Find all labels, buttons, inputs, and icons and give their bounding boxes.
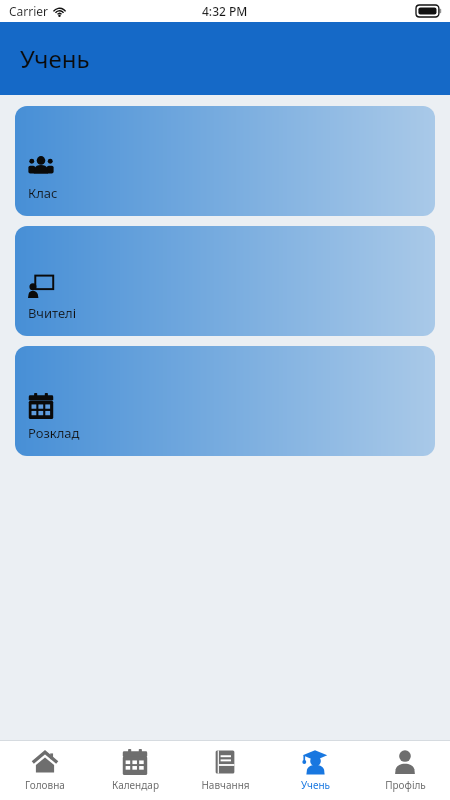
button[interactable]: Календар (90, 741, 180, 800)
staticText: Вчителі (28, 304, 77, 322)
staticText: Клас (28, 184, 58, 202)
staticText: Профіль (385, 778, 426, 792)
staticText: Учень (20, 42, 90, 75)
staticText: Carrier (9, 3, 49, 19)
staticText: 4:32 PM (202, 3, 248, 19)
button[interactable]: Розклад (15, 346, 435, 456)
button[interactable]: Учень (270, 741, 360, 800)
staticText: Календар (112, 778, 159, 792)
staticText: Розклад (28, 424, 80, 442)
button[interactable]: Профіль (360, 741, 450, 800)
button[interactable]: Вчителі (15, 226, 435, 336)
staticText: Головна (25, 778, 65, 792)
staticText: Навчання (201, 778, 250, 792)
staticText: Учень (301, 778, 330, 792)
button[interactable]: Головна (0, 741, 90, 800)
button[interactable]: Клас (15, 106, 435, 216)
button[interactable]: Навчання (180, 741, 270, 800)
